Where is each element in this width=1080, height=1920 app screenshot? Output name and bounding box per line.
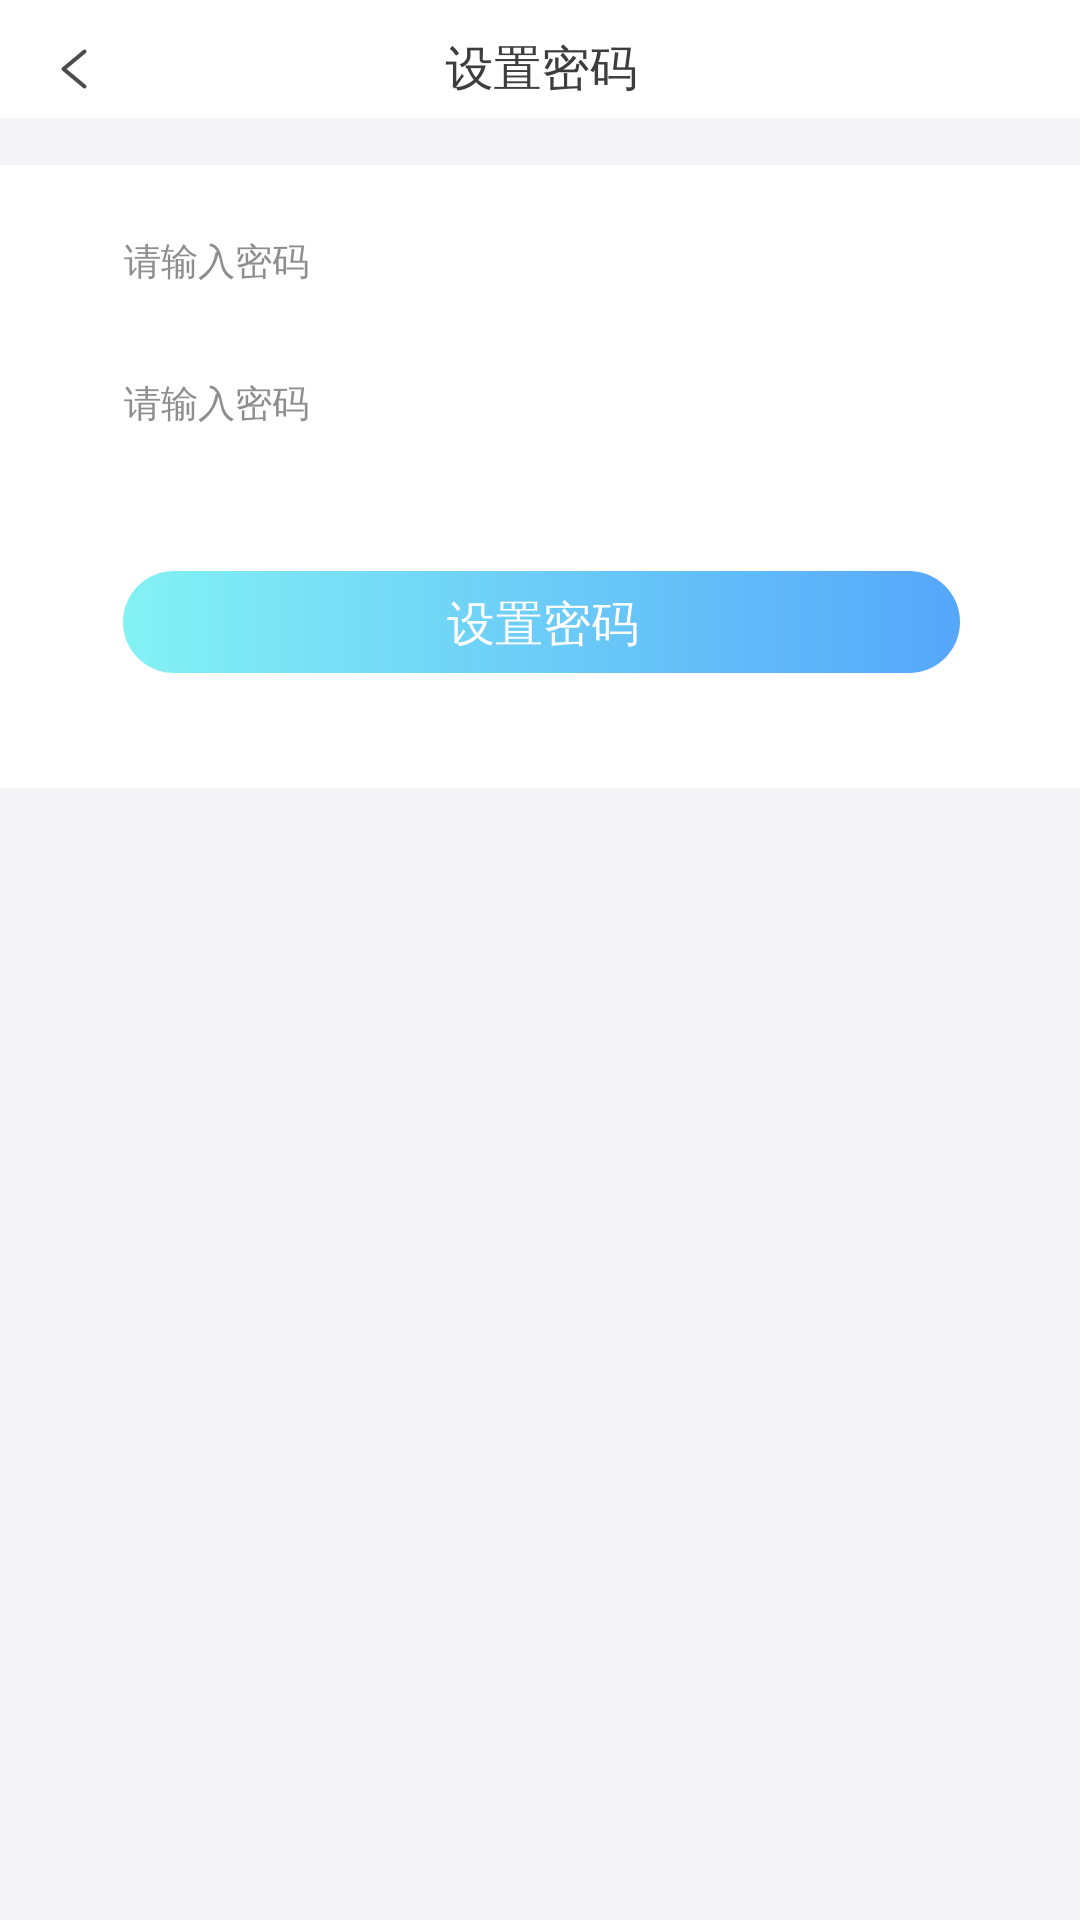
button[interactable]: 返回	[0, 0, 129, 118]
staticText: 请输入密码	[124, 381, 309, 427]
staticText: 设置密码	[445, 39, 637, 98]
staticText: 设置密码	[447, 595, 639, 654]
button[interactable]: 请输入密码	[123, 332, 960, 474]
button[interactable]: 请输入密码	[123, 190, 960, 332]
staticText: 请输入密码	[124, 239, 309, 285]
button[interactable]: 设置密码	[123, 571, 960, 673]
